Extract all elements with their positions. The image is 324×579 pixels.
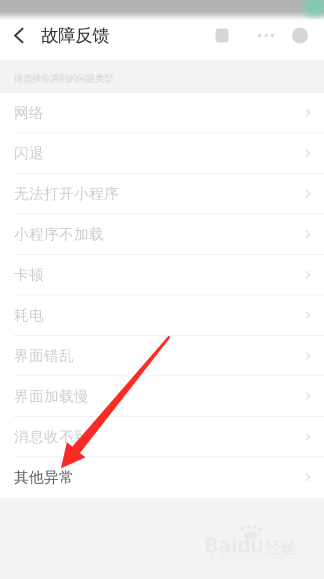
button[interactable]: 无法打开小程序	[0, 174, 324, 214]
button[interactable]: 界面加载慢	[0, 376, 324, 417]
button[interactable]: Screenshot	[208, 15, 236, 56]
staticText: 闪退	[14, 144, 44, 162]
button[interactable]: Back	[0, 15, 41, 56]
button[interactable]: 界面错乱	[0, 336, 324, 376]
staticText: 经验	[265, 539, 297, 558]
staticText: jingyan.baidu.com	[209, 549, 291, 561]
staticText: 请选择你遇到的问题类型	[14, 72, 113, 84]
staticText: 界面错乱	[14, 347, 74, 365]
staticText: 网络	[14, 104, 44, 122]
staticText: 消息收不到	[14, 428, 89, 446]
button[interactable]: 其他异常	[0, 457, 324, 498]
button[interactable]: 网络	[0, 93, 324, 133]
staticText: 其他异常	[14, 468, 74, 486]
staticText: 小程序不加载	[14, 225, 104, 243]
staticText: 耗电	[14, 306, 44, 324]
staticText: Baidu	[204, 530, 264, 558]
staticText: 卡顿	[14, 266, 44, 284]
staticText: 界面加载慢	[14, 387, 89, 405]
button[interactable]: 卡顿	[0, 255, 324, 295]
staticText: 故障反馈	[41, 25, 109, 46]
button[interactable]: 小程序不加载	[0, 214, 324, 255]
button[interactable]: 闪退	[0, 133, 324, 174]
staticText: 无法打开小程序	[14, 185, 119, 203]
button[interactable]: More	[252, 15, 280, 56]
button[interactable]: 消息收不到	[0, 417, 324, 457]
button[interactable]: 耗电	[0, 295, 324, 336]
button[interactable]: Close	[286, 15, 314, 56]
